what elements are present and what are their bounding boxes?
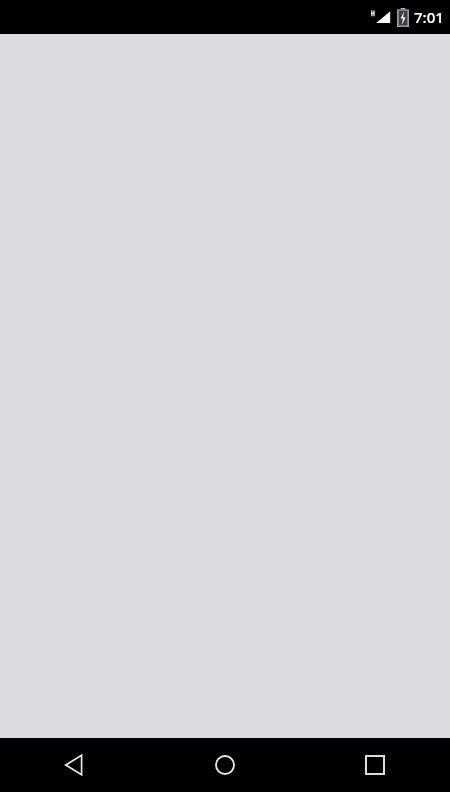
button[interactable]: Home: [150, 738, 300, 792]
button[interactable]: Back: [0, 738, 150, 792]
staticText: 7:01: [414, 7, 444, 27]
button[interactable]: Recent apps: [300, 738, 450, 792]
